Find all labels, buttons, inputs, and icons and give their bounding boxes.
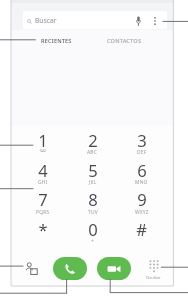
button[interactable]: *: [18, 218, 68, 239]
staticText: *: [38, 218, 48, 239]
button[interactable]: 1: [18, 129, 68, 150]
button[interactable]: Video call: [97, 257, 131, 280]
staticText: TUV: [88, 209, 98, 216]
staticText: 3: [137, 129, 147, 150]
button[interactable]: 6: [117, 159, 166, 180]
button[interactable]: #: [117, 218, 166, 239]
button[interactable]: 4: [18, 159, 68, 180]
staticText: 6: [137, 159, 147, 180]
staticText: 5: [88, 159, 98, 180]
button[interactable]: CONTACTOS: [90, 30, 159, 50]
button[interactable]: RECIENTES: [22, 30, 90, 50]
staticText: RECIENTES: [41, 37, 72, 45]
button[interactable]: 2: [68, 129, 117, 150]
staticText: GHI: [38, 179, 48, 186]
staticText: DEF: [137, 149, 147, 156]
staticText: PQRS: [36, 209, 50, 216]
staticText: Buscar: [35, 16, 57, 25]
staticText: 8: [88, 188, 98, 209]
staticText: JKL: [89, 179, 97, 186]
staticText: MNO: [135, 179, 148, 186]
staticText: 7: [38, 188, 48, 209]
button[interactable]: 3: [117, 129, 166, 150]
staticText: 9: [137, 188, 147, 209]
button[interactable]: 8: [68, 188, 117, 209]
staticText: WXYZ: [135, 209, 149, 216]
staticText: 4: [38, 159, 48, 180]
staticText: Ocultar: [146, 275, 161, 281]
button[interactable]: Voice search: [131, 11, 145, 31]
staticText: +: [91, 238, 95, 245]
button[interactable]: 5: [68, 159, 117, 180]
staticText: 1: [38, 129, 48, 150]
button[interactable]: Add contact: [22, 259, 40, 277]
button[interactable]: 9: [117, 188, 166, 209]
staticText: 0: [88, 218, 98, 239]
button[interactable]: Buscar: [23, 11, 167, 29]
button[interactable]: 0: [68, 218, 117, 239]
staticText: #: [136, 218, 147, 239]
staticText: 2: [88, 129, 98, 150]
button[interactable]: Call: [53, 257, 87, 280]
button[interactable]: 7: [18, 188, 68, 209]
staticText: CONTACTOS: [107, 37, 142, 45]
button[interactable]: More options: [148, 11, 162, 31]
button[interactable]: Ocultar: [143, 256, 163, 281]
staticText: ABC: [87, 149, 98, 156]
